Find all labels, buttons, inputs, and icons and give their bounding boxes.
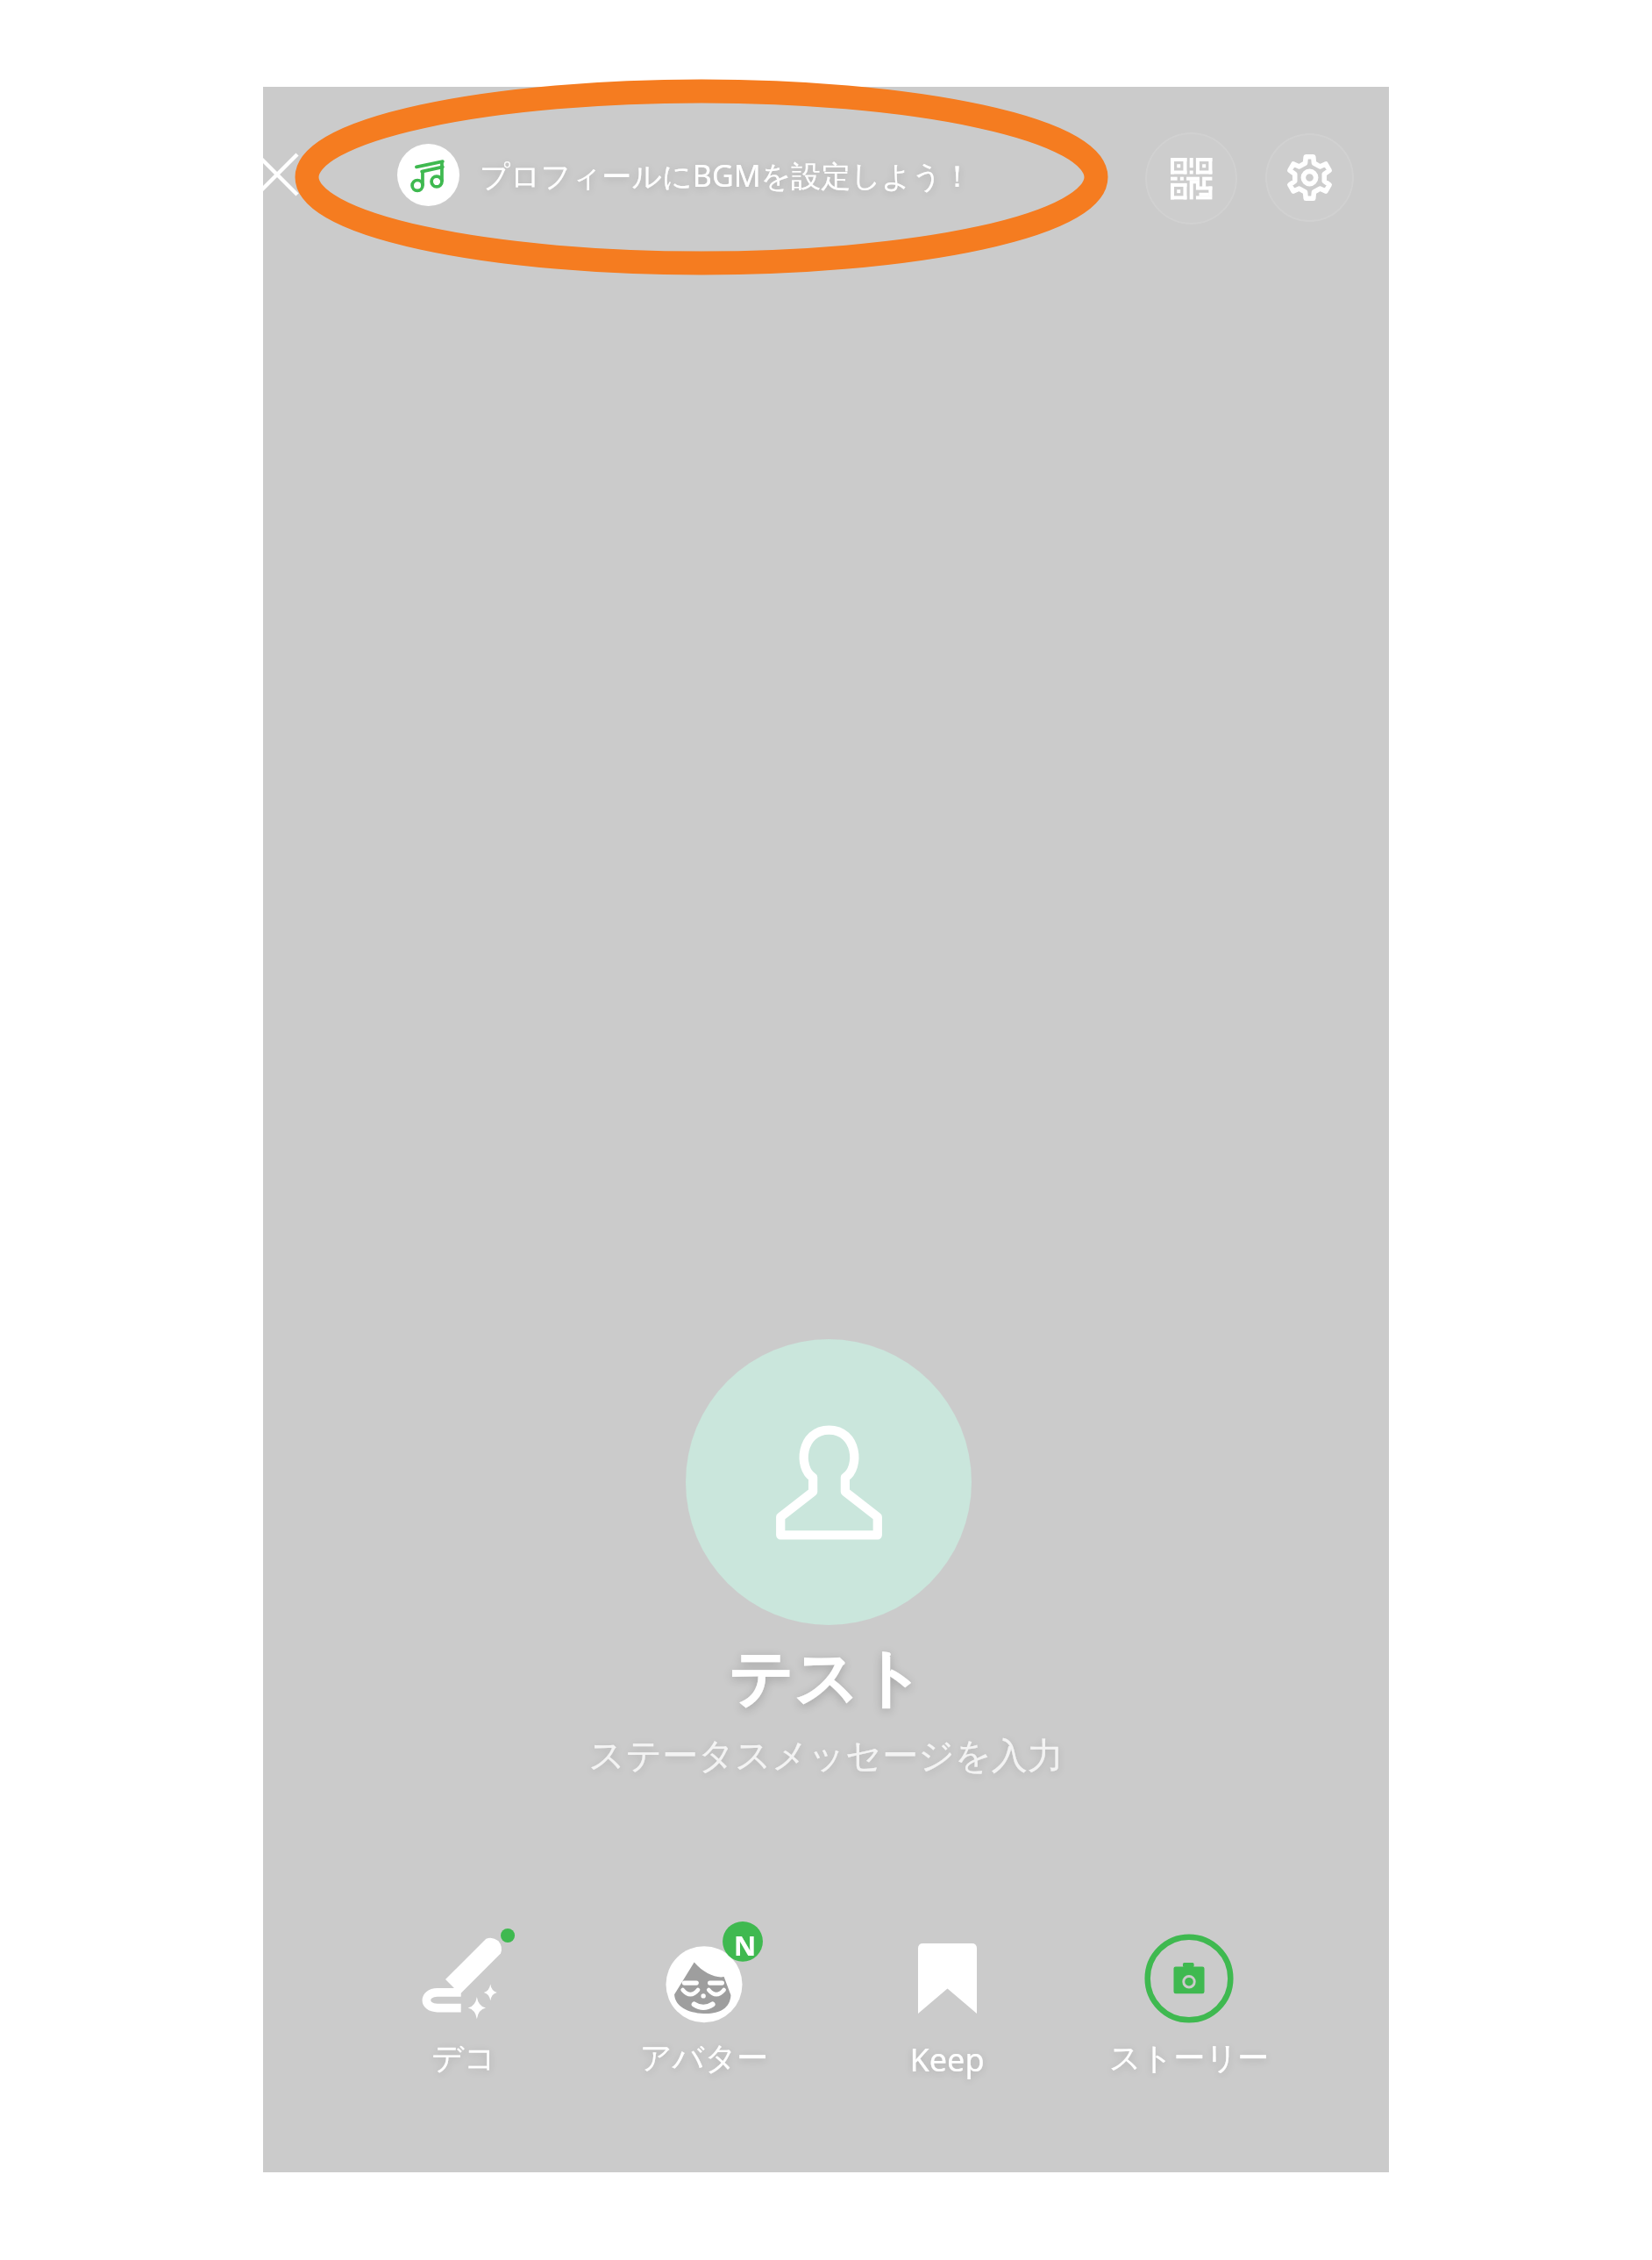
staticText: デコ — [345, 2038, 582, 2078]
button[interactable]: Close — [238, 135, 317, 214]
button[interactable]: デコ — [345, 1921, 582, 2167]
staticText: ステータスメッセージを入力 — [263, 1734, 1389, 1779]
staticText: アバター — [586, 2038, 822, 2078]
staticText: Keep — [829, 2038, 1065, 2081]
button[interactable]: Settings — [1265, 133, 1354, 222]
staticText: プロフィールにBGMを設定しよう！ — [480, 155, 972, 196]
button[interactable]: Profile photo — [686, 1339, 972, 1625]
button[interactable]: ストーリー — [1071, 1921, 1307, 2167]
button[interactable]: N — [586, 1921, 822, 2167]
button[interactable]: QR code — [1145, 132, 1237, 225]
staticText: テスト — [263, 1639, 1389, 1720]
button[interactable]: プロフィールにBGMを設定しよう！ — [388, 134, 976, 215]
staticText: ストーリー — [1071, 2038, 1307, 2078]
button[interactable]: Keep — [829, 1921, 1065, 2167]
staticText: N — [734, 1927, 757, 1964]
